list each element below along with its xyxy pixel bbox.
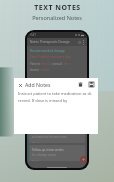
staticText: Jun 04 xyxy=(32,158,39,161)
staticText: consult xyxy=(52,62,64,66)
button[interactable]: Instruct patient to take medication xyxy=(29,127,85,143)
button[interactable]: Follow-up in two weeks xyxy=(29,145,85,161)
staticText: Add Notes xyxy=(25,81,51,88)
staticText: Instruct patient to take medication as d… xyxy=(18,91,93,103)
staticText: TEXT NOTES xyxy=(34,3,81,13)
staticText: before xyxy=(41,68,51,72)
staticText: Jun 12 xyxy=(32,140,39,143)
staticText: Follow-up in two weeks xyxy=(32,148,64,152)
staticText: Recommended dosage xyxy=(30,49,65,53)
staticText: doctor xyxy=(30,68,41,72)
button[interactable]: Save xyxy=(87,80,96,89)
button[interactable]: Close xyxy=(16,81,24,89)
staticText: Personalized Notes xyxy=(32,14,82,21)
staticText: Patient xyxy=(30,62,41,66)
staticText: their xyxy=(64,62,71,66)
staticText: Notes Therapeutic Dosage xyxy=(30,40,70,44)
button[interactable]: Add note xyxy=(80,156,87,163)
button[interactable]: Delete xyxy=(76,80,85,89)
staticText: Take 1 tablet twice per day xyxy=(30,55,71,59)
staticText: 9:41 xyxy=(30,33,36,37)
staticText: as directed at the same time xyxy=(32,135,67,139)
staticText: for a dosage review xyxy=(32,153,56,157)
staticText: should xyxy=(41,62,52,66)
